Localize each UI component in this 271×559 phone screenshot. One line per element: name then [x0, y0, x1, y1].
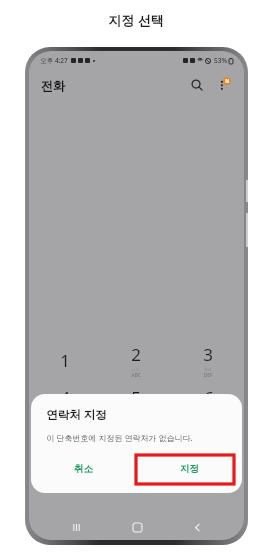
button[interactable]: 2	[100, 339, 172, 382]
button[interactable]: 7	[29, 425, 100, 468]
button[interactable]: 6	[172, 382, 244, 425]
staticText: 2	[131, 343, 141, 366]
staticText: 0	[132, 471, 141, 491]
button[interactable]: 지정	[137, 454, 242, 484]
staticText: 연락처 지정	[46, 407, 107, 423]
button[interactable]: ∗	[29, 468, 100, 494]
staticText: ㅈㅊ	[132, 453, 140, 458]
staticText: 오후 4:27	[40, 56, 68, 65]
staticText: 1	[60, 349, 70, 372]
button[interactable]: 5	[100, 382, 172, 425]
button[interactable]: 4	[29, 382, 100, 425]
staticText: 5	[131, 386, 141, 409]
button[interactable]: 취소	[31, 454, 136, 484]
button[interactable]: Search	[187, 75, 207, 95]
staticText: 취소	[74, 463, 93, 475]
button[interactable]: Home	[124, 514, 150, 540]
button[interactable]: #	[172, 468, 244, 494]
button[interactable]: More options	[213, 75, 233, 95]
button[interactable]: 1	[29, 339, 100, 382]
staticText: GHI	[60, 415, 70, 422]
staticText: 8	[131, 429, 141, 452]
button[interactable]: 8	[100, 425, 172, 468]
button[interactable]: Back	[184, 514, 210, 540]
staticText: 지정 선택	[108, 11, 164, 29]
staticText: TUV	[131, 458, 141, 465]
staticText: 이 단축번호에 지정된 연락처가 없습니다.	[46, 432, 193, 443]
staticText: 53%	[214, 56, 227, 65]
staticText: ㄴㄷ	[132, 367, 140, 372]
staticText: 4	[60, 386, 70, 409]
staticText: #	[203, 471, 213, 491]
staticText: 6	[204, 386, 214, 409]
staticText: 전화	[41, 78, 65, 93]
staticText: 7	[60, 429, 70, 452]
button[interactable]: 9	[172, 425, 244, 468]
staticText: 지정	[180, 463, 199, 475]
button[interactable]: 3	[172, 339, 244, 382]
staticText: ABC	[131, 372, 141, 379]
staticText: ㄹㅁ	[204, 367, 212, 372]
button[interactable]: 0	[100, 468, 172, 494]
staticText: DEF	[203, 372, 213, 379]
staticText: ㅋㅌ	[204, 453, 212, 458]
staticText: N	[225, 78, 229, 84]
staticText: 3	[203, 343, 213, 366]
button[interactable]: Recents	[63, 514, 89, 540]
staticText: ㄱㅋ	[61, 410, 69, 415]
